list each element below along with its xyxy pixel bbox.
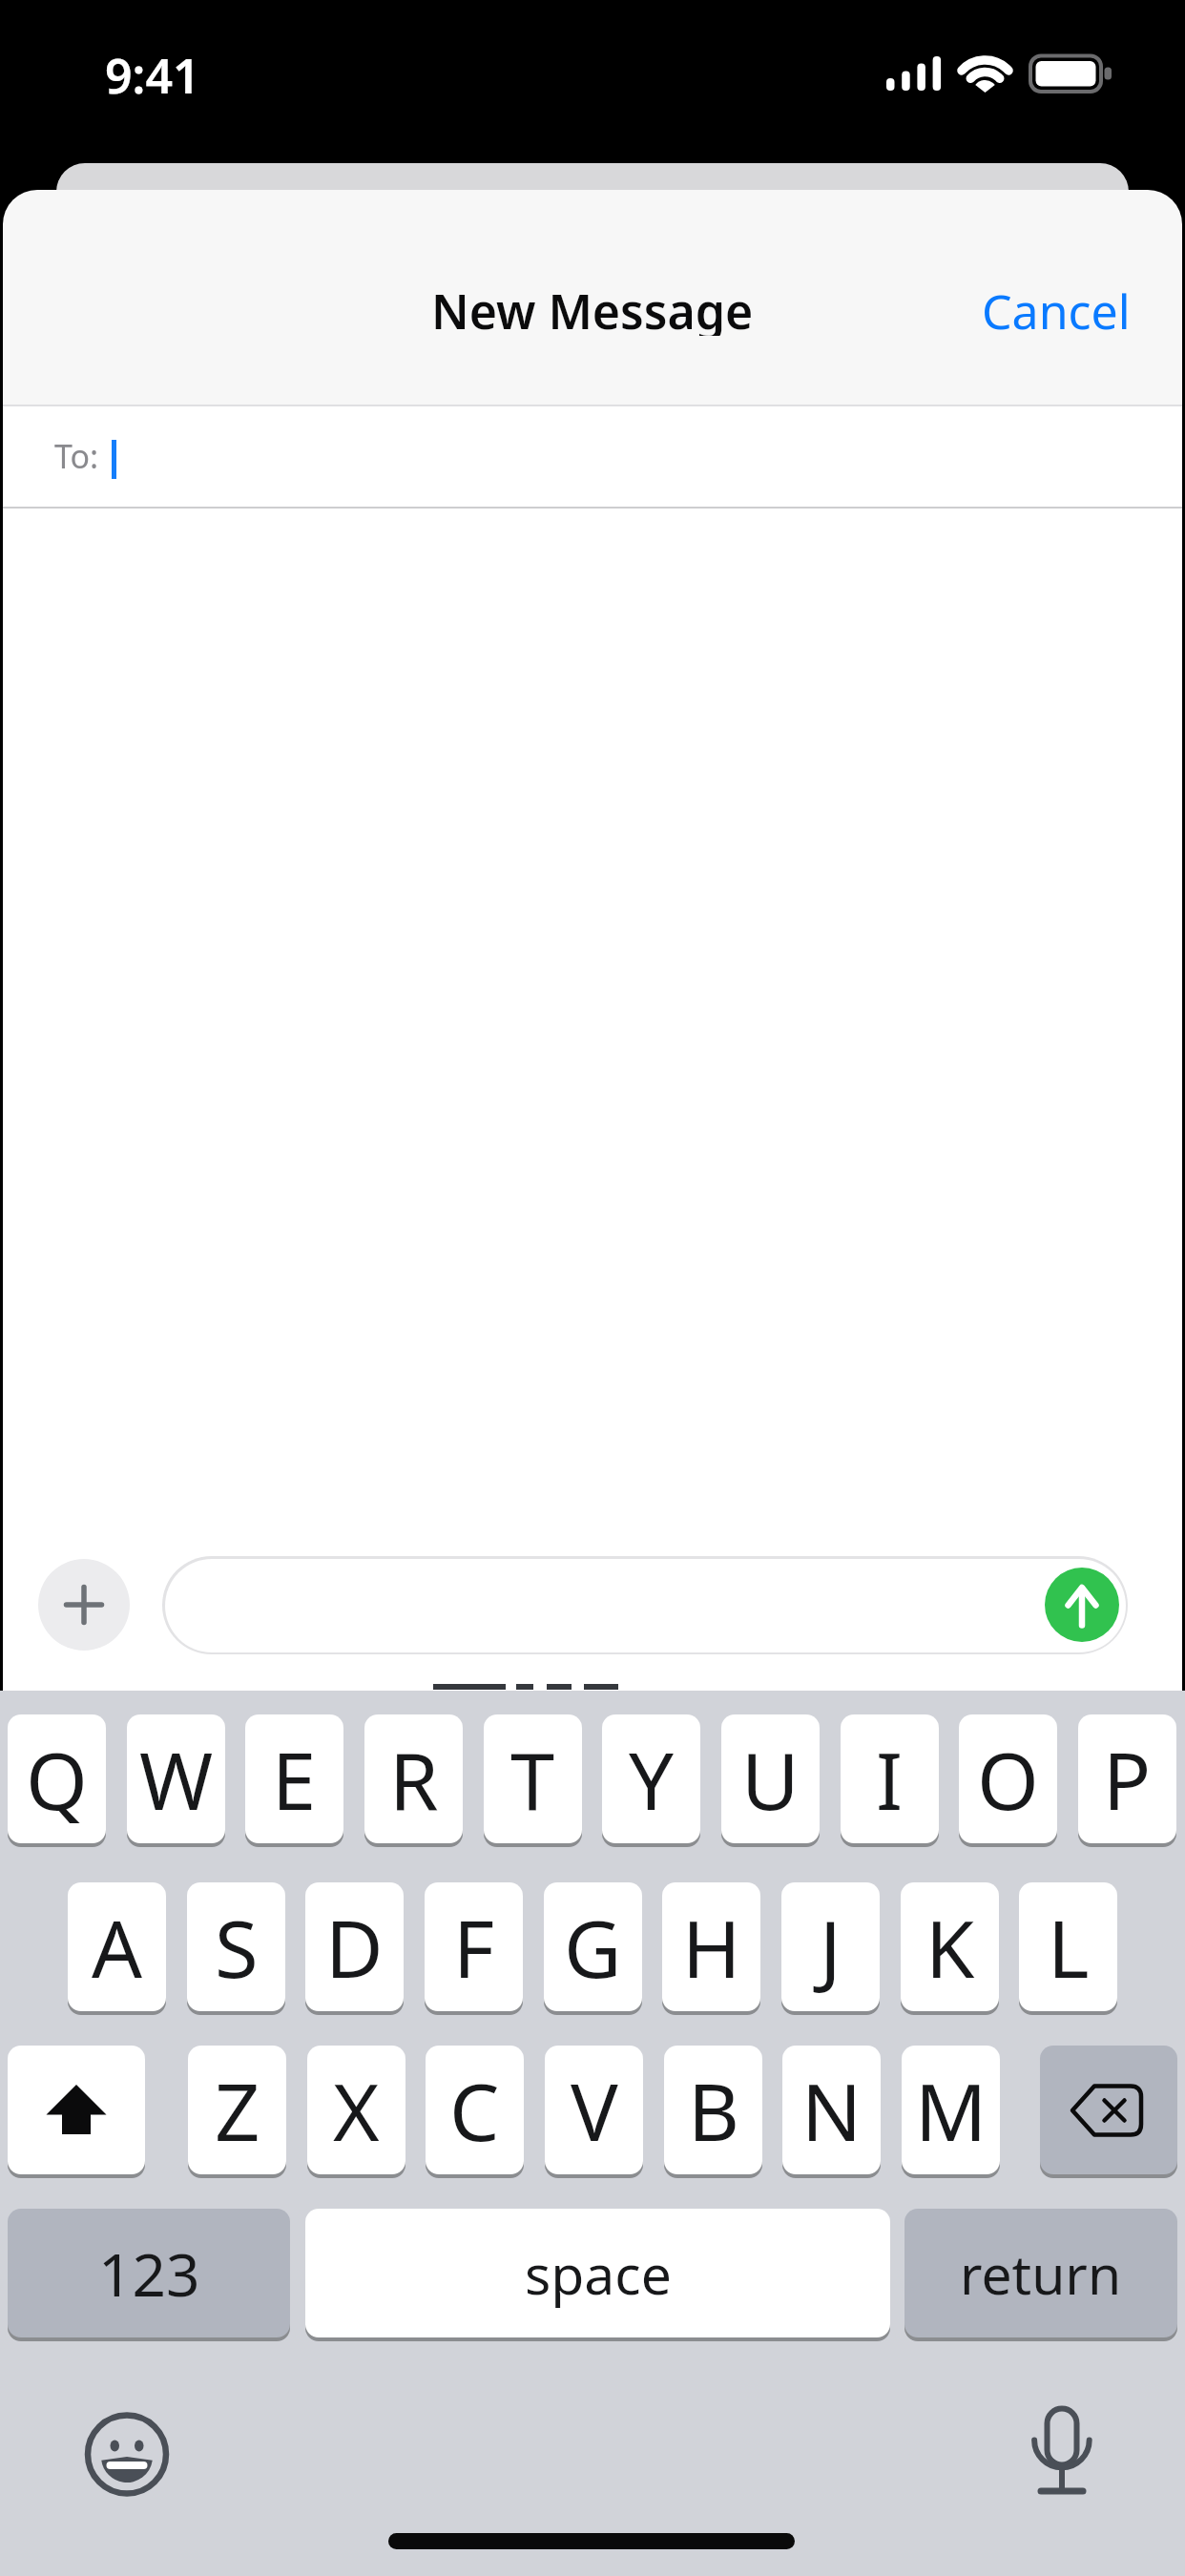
staticText: N (801, 2056, 863, 2164)
staticText: P (1103, 1725, 1152, 1833)
staticText: O (977, 1725, 1039, 1833)
button[interactable]: A (68, 1882, 166, 2011)
button[interactable] (38, 1559, 130, 1651)
button[interactable]: V (545, 2046, 643, 2174)
button[interactable]: Q (8, 1714, 106, 1843)
button[interactable]: Y (602, 1714, 700, 1843)
button[interactable]: H (662, 1882, 760, 2011)
button[interactable]: F (425, 1882, 523, 2011)
button[interactable]: B (664, 2046, 762, 2174)
button[interactable]: S (187, 1882, 285, 2011)
staticText: B (688, 2056, 739, 2164)
staticText: L (1048, 1893, 1090, 2001)
staticText: R (389, 1725, 439, 1833)
staticText: F (453, 1893, 495, 2001)
staticText: To: (54, 434, 108, 478)
staticText: G (564, 1893, 622, 2001)
staticText: E (272, 1725, 317, 1833)
button[interactable]: O (959, 1714, 1057, 1843)
staticText: C (449, 2056, 500, 2164)
button[interactable] (1045, 1568, 1119, 1642)
button[interactable]: T (484, 1714, 582, 1843)
staticText: J (820, 1893, 842, 2001)
button[interactable]: N (782, 2046, 881, 2174)
staticText: V (571, 2056, 618, 2164)
staticText: U (741, 1725, 800, 1833)
button[interactable]: J (781, 1882, 880, 2011)
button[interactable]: D (305, 1882, 404, 2011)
button[interactable]: Z (188, 2046, 286, 2174)
button[interactable]: L (1019, 1882, 1117, 2011)
button[interactable]: P (1078, 1714, 1176, 1843)
button[interactable]: X (307, 2046, 405, 2174)
staticText: S (215, 1893, 259, 2001)
button[interactable]: G (544, 1882, 642, 2011)
button[interactable]: C (426, 2046, 524, 2174)
button[interactable] (1021, 2399, 1107, 2500)
staticText: Cancel (982, 279, 1131, 336)
button[interactable]: 123 (8, 2209, 290, 2337)
staticText: W (139, 1725, 214, 1833)
button[interactable]: W (127, 1714, 225, 1843)
button[interactable]: U (721, 1714, 820, 1843)
staticText: T (510, 1725, 555, 1833)
staticText: A (92, 1893, 143, 2001)
button[interactable] (84, 2412, 170, 2498)
staticText: Y (629, 1725, 674, 1833)
staticText: Z (215, 2056, 260, 2164)
staticText: Q (26, 1725, 88, 1833)
button[interactable]: I (841, 1714, 939, 1843)
button[interactable] (8, 2046, 145, 2174)
staticText: 9:41 (105, 43, 200, 100)
staticText: K (925, 1893, 975, 2001)
button[interactable]: R (364, 1714, 463, 1843)
button[interactable]: E (245, 1714, 343, 1843)
staticText: M (915, 2056, 987, 2164)
staticText: H (682, 1893, 741, 2001)
staticText: space (525, 2236, 672, 2311)
staticText: D (325, 1893, 384, 2001)
button[interactable]: return (904, 2209, 1177, 2337)
button[interactable] (1040, 2046, 1177, 2174)
button[interactable]: K (901, 1882, 999, 2011)
button[interactable]: Cancel (844, 279, 1131, 336)
button[interactable] (3, 405, 1182, 507)
staticText: I (876, 1725, 904, 1833)
staticText: return (960, 2236, 1122, 2311)
button[interactable] (162, 1556, 1128, 1654)
staticText: X (333, 2056, 380, 2164)
button[interactable]: M (902, 2046, 1000, 2174)
staticText: 123 (98, 2233, 200, 2314)
button[interactable]: space (305, 2209, 890, 2337)
staticText: New Message (431, 279, 754, 336)
